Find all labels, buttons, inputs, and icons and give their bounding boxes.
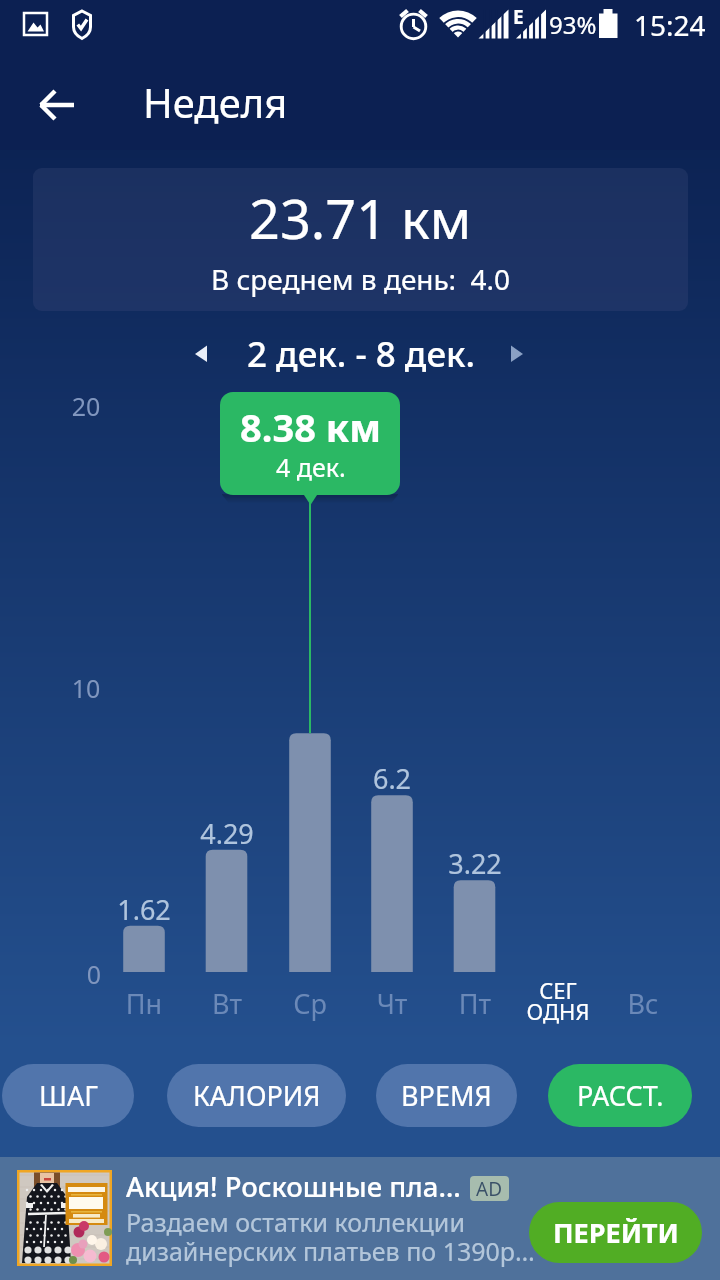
- button[interactable]: СЕГ ОДНЯ: [498, 975, 618, 1027]
- button[interactable]: Previous week: [179, 330, 227, 378]
- button[interactable]: Day column: [434, 600, 516, 972]
- button[interactable]: Day column: [186, 600, 268, 972]
- staticText: Вт: [167, 985, 287, 1022]
- staticText: 1.62: [84, 891, 204, 928]
- staticText: Пн: [84, 985, 204, 1022]
- staticText: ВРЕМЯ: [401, 1077, 492, 1114]
- button[interactable]: Day column: [103, 600, 185, 972]
- staticText: 4.29: [167, 815, 287, 852]
- staticText: 20: [36, 389, 136, 423]
- staticText: 8.38 км: [240, 401, 381, 453]
- staticText: Ср: [250, 985, 370, 1022]
- button[interactable]: ШАГ: [2, 1064, 134, 1127]
- button[interactable]: КАЛОРИЯ: [167, 1064, 346, 1127]
- button[interactable]: ВРЕМЯ: [376, 1064, 517, 1127]
- staticText: Раздаем остатки коллекции дизайнерских п…: [126, 1205, 535, 1268]
- button[interactable]: Акция! Роскошные пла…: [0, 1157, 720, 1280]
- button[interactable]: РАССТ.: [548, 1064, 692, 1127]
- button[interactable]: Day column: [351, 600, 433, 972]
- staticText: Неделя: [143, 75, 288, 129]
- staticText: 93%: [549, 8, 597, 41]
- button[interactable]: Day column: [602, 600, 684, 972]
- staticText: AD: [476, 1176, 503, 1201]
- staticText: 2 дек. - 8 дек.: [247, 330, 476, 378]
- staticText: СЕГ ОДНЯ: [498, 975, 618, 1027]
- staticText: Вс: [583, 985, 703, 1022]
- staticText: РАССТ.: [577, 1077, 664, 1114]
- staticText: 3.22: [415, 845, 535, 882]
- staticText: 23.71 км: [249, 181, 472, 255]
- staticText: Чт: [332, 985, 452, 1022]
- staticText: 4 дек.: [276, 450, 346, 484]
- staticText: 0: [44, 957, 144, 991]
- staticText: ПЕРЕЙТИ: [553, 1214, 679, 1251]
- staticText: E: [513, 4, 524, 30]
- staticText: Акция! Роскошные пла…: [126, 1168, 461, 1205]
- button[interactable]: AD: [470, 1176, 509, 1201]
- button[interactable]: Next week: [494, 330, 542, 378]
- staticText: 10: [36, 671, 136, 705]
- staticText: 15:24: [634, 6, 706, 44]
- staticText: В среднем в день: 4.0: [211, 260, 511, 298]
- button[interactable]: Day column: [269, 600, 351, 972]
- staticText: Пт: [415, 985, 535, 1022]
- staticText: 6.2: [332, 760, 452, 797]
- button[interactable]: ПЕРЕЙТИ: [529, 1202, 702, 1263]
- staticText: КАЛОРИЯ: [193, 1077, 321, 1114]
- button[interactable]: 8.38 км: [220, 392, 400, 495]
- button[interactable]: Back: [24, 72, 90, 138]
- button[interactable]: 23.71 км: [33, 168, 688, 311]
- staticText: ШАГ: [39, 1077, 98, 1114]
- button[interactable]: Day column: [517, 600, 599, 972]
